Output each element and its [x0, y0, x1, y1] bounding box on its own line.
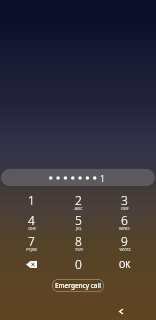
staticText: TUV — [75, 247, 83, 253]
button[interactable]: 4 — [8, 213, 55, 233]
staticText: GHI — [28, 226, 36, 232]
staticText: 5 — [75, 212, 82, 228]
button[interactable]: 8 — [55, 234, 102, 254]
button[interactable]: 9 — [101, 234, 148, 254]
staticText: 8 — [75, 233, 82, 249]
button[interactable]: 0 — [55, 254, 102, 274]
staticText: WXYZ — [119, 247, 131, 253]
staticText: 9 — [121, 233, 128, 249]
staticText: 3 — [121, 192, 128, 208]
button[interactable]: 1 — [8, 193, 55, 213]
staticText: DEF — [121, 206, 129, 212]
staticText: JKL — [76, 226, 82, 232]
button[interactable]: Back — [109, 300, 133, 320]
button[interactable]: 3 — [101, 193, 148, 213]
staticText: 2 — [75, 192, 82, 208]
staticText: 1 — [28, 192, 35, 208]
button[interactable]: 6 — [101, 213, 148, 233]
staticText: MNO — [119, 226, 130, 232]
staticText: Emergency call — [55, 281, 101, 290]
staticText: 6 — [121, 212, 128, 228]
button[interactable]: OK — [101, 254, 148, 274]
staticText: 7 — [28, 233, 35, 249]
button[interactable]: 2 — [55, 193, 102, 213]
button[interactable]: PIN entry — [1, 169, 155, 186]
button[interactable]: Emergency call — [52, 279, 104, 292]
button[interactable]: 7 — [8, 234, 55, 254]
staticText: PQRS — [26, 247, 37, 253]
staticText: 0 — [75, 256, 82, 272]
button[interactable]: 5 — [55, 213, 102, 233]
staticText: OK — [119, 259, 131, 270]
staticText: 1 — [100, 172, 106, 184]
button[interactable]: Backspace — [8, 254, 55, 274]
staticText: ABC — [74, 206, 83, 212]
staticText: 4 — [28, 212, 35, 228]
